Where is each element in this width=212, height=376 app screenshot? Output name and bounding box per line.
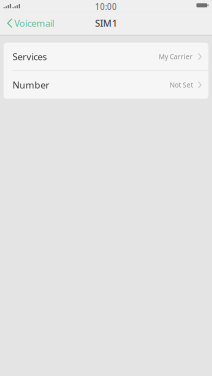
staticText: Number bbox=[12, 79, 49, 91]
button[interactable]: Number bbox=[4, 71, 208, 99]
staticText: Voicemail bbox=[14, 17, 54, 29]
staticText: Services bbox=[12, 50, 46, 63]
button[interactable]: Voicemail bbox=[0, 11, 59, 35]
staticText: SIM1 bbox=[95, 17, 117, 29]
staticText: Not Set bbox=[170, 80, 193, 89]
button[interactable]: Services bbox=[4, 43, 208, 70]
staticText: My Carrier bbox=[159, 52, 193, 61]
staticText: 10:00 bbox=[95, 1, 117, 12]
